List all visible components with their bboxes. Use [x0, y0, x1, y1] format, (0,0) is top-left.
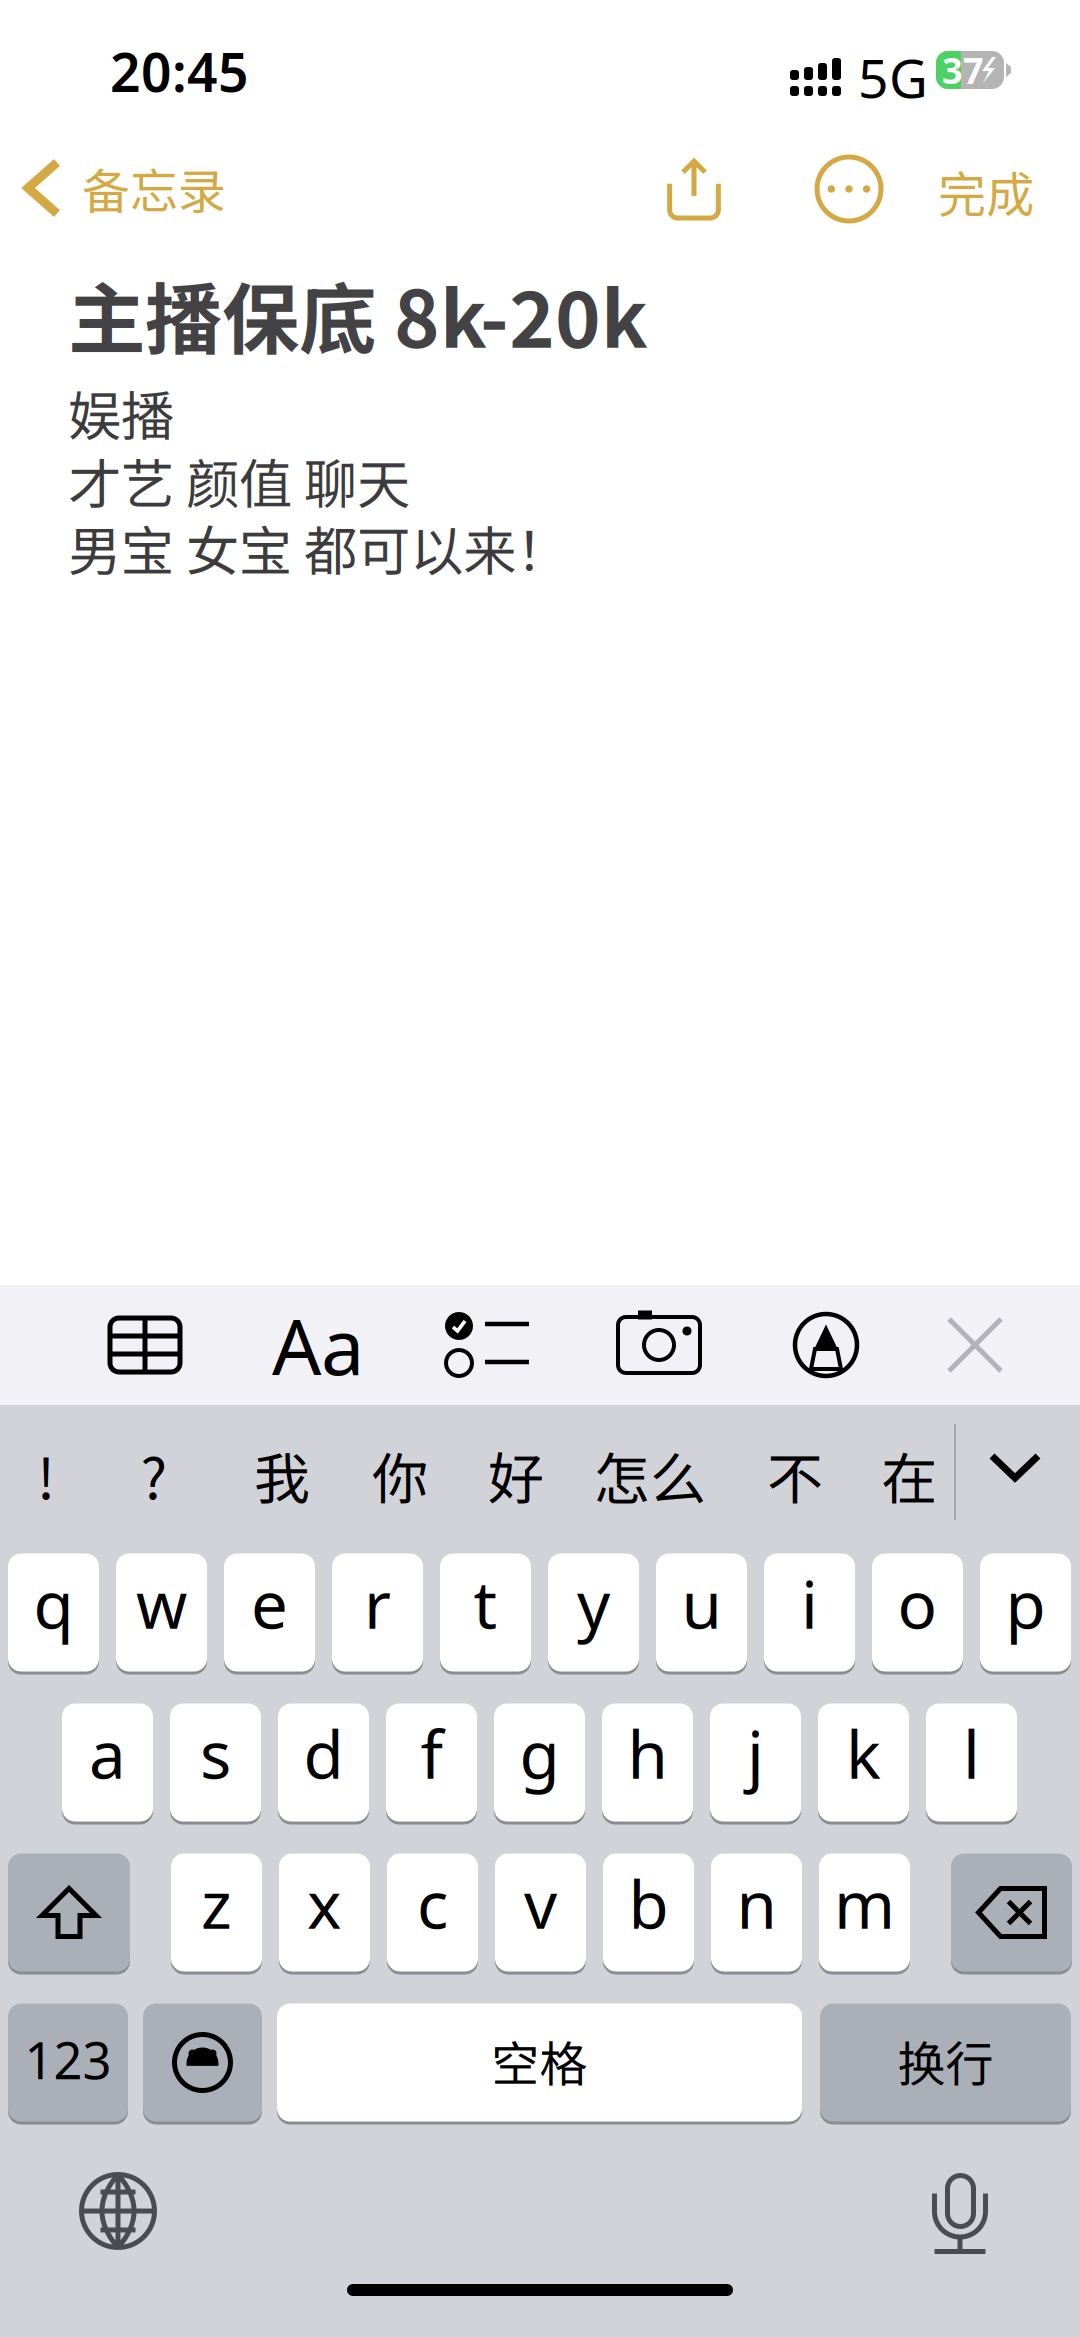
button[interactable]: Table: [80, 1285, 210, 1405]
staticText: 主播保底 8k-20k: [68, 258, 648, 370]
staticText: 不: [767, 1434, 823, 1516]
button[interactable]: 怎么: [570, 1405, 730, 1545]
button[interactable]: b: [603, 1852, 694, 1973]
button[interactable]: z: [171, 1852, 262, 1973]
staticText: 5G: [858, 42, 928, 113]
button[interactable]: 不: [736, 1405, 854, 1545]
button[interactable]: t: [440, 1552, 531, 1673]
button[interactable]: Dictate: [912, 2153, 1008, 2249]
staticText: x: [307, 1860, 342, 1947]
button[interactable]: Next keyboard: [70, 2163, 166, 2259]
staticText: !: [37, 1434, 55, 1516]
button[interactable]: d: [278, 1702, 369, 1823]
button[interactable]: i: [764, 1552, 855, 1673]
button[interactable]: Aa: [253, 1285, 383, 1405]
staticText: 备忘录: [82, 153, 226, 223]
staticText: Aa: [272, 1294, 364, 1396]
staticText: 20:45: [110, 36, 249, 107]
button[interactable]: 好: [456, 1405, 576, 1545]
button[interactable]: h: [602, 1702, 693, 1823]
staticText: a: [89, 1710, 126, 1797]
button[interactable]: Shift: [8, 1852, 130, 1973]
button[interactable]: u: [656, 1552, 747, 1673]
staticText: 123: [24, 2026, 111, 2093]
staticText: p: [1005, 1560, 1045, 1647]
staticText: u: [681, 1560, 721, 1647]
button[interactable]: g: [494, 1702, 585, 1823]
staticText: e: [251, 1560, 288, 1647]
staticText: s: [200, 1710, 231, 1797]
button[interactable]: s: [170, 1702, 261, 1823]
button[interactable]: j: [710, 1702, 801, 1823]
staticText: q: [33, 1560, 73, 1647]
staticText: w: [136, 1560, 187, 1647]
button[interactable]: More: [810, 146, 888, 232]
button[interactable]: k: [818, 1702, 909, 1823]
staticText: d: [303, 1710, 343, 1797]
staticText: b: [628, 1860, 668, 1947]
staticText: 才艺 颜值 聊天: [68, 442, 410, 519]
button[interactable]: Checklist: [422, 1285, 552, 1405]
button[interactable]: 我: [222, 1405, 342, 1545]
staticText: 怎么: [594, 1434, 706, 1516]
staticText: n: [736, 1860, 776, 1947]
staticText: y: [577, 1560, 610, 1647]
button[interactable]: Markup: [761, 1285, 891, 1405]
button[interactable]: 在: [850, 1405, 968, 1545]
button[interactable]: m: [819, 1852, 910, 1973]
staticText: c: [417, 1860, 448, 1947]
button[interactable]: 空格: [277, 2002, 802, 2123]
button[interactable]: !: [0, 1405, 92, 1545]
button[interactable]: n: [711, 1852, 802, 1973]
staticText: 37: [942, 46, 984, 94]
staticText: 我: [254, 1434, 310, 1516]
button[interactable]: Delete: [951, 1852, 1072, 1973]
button[interactable]: w: [116, 1552, 207, 1673]
button[interactable]: q: [8, 1552, 99, 1673]
staticText: 在: [881, 1434, 937, 1516]
button[interactable]: a: [62, 1702, 153, 1823]
button[interactable]: 你: [340, 1405, 460, 1545]
staticText: f: [420, 1710, 442, 1797]
staticText: z: [201, 1860, 232, 1947]
button[interactable]: o: [872, 1552, 963, 1673]
button[interactable]: Share: [655, 146, 733, 232]
staticText: 好: [488, 1434, 544, 1516]
staticText: r: [364, 1560, 391, 1647]
staticText: 你: [372, 1434, 428, 1516]
staticText: i: [801, 1560, 818, 1647]
button[interactable]: Close: [910, 1285, 1040, 1405]
button[interactable]: Hide candidates: [960, 1405, 1070, 1529]
button[interactable]: 123: [8, 2002, 128, 2123]
button[interactable]: Camera: [594, 1285, 724, 1405]
button[interactable]: c: [387, 1852, 478, 1973]
button[interactable]: e: [224, 1552, 315, 1673]
staticText: v: [524, 1860, 557, 1947]
button[interactable]: y: [548, 1552, 639, 1673]
button[interactable]: p: [980, 1552, 1071, 1673]
staticText: 换行: [897, 2026, 993, 2095]
staticText: 空格: [491, 2026, 587, 2095]
staticText: 完成: [938, 156, 1034, 226]
button[interactable]: f: [386, 1702, 477, 1823]
staticText: 娱播: [68, 374, 174, 451]
button[interactable]: 换行: [820, 2002, 1071, 2123]
button[interactable]: r: [332, 1552, 423, 1673]
button[interactable]: ?: [104, 1405, 204, 1545]
button[interactable]: x: [279, 1852, 370, 1973]
staticText: o: [897, 1560, 937, 1647]
staticText: t: [473, 1560, 497, 1647]
button[interactable]: 完成: [938, 148, 1034, 234]
staticText: k: [846, 1710, 881, 1797]
staticText: h: [627, 1710, 667, 1797]
staticText: j: [747, 1710, 764, 1797]
button[interactable]: v: [495, 1852, 586, 1973]
button[interactable]: l: [926, 1702, 1017, 1823]
staticText: 男宝 女宝 都可以来！: [68, 509, 569, 586]
button[interactable]: 备忘录: [28, 145, 226, 231]
staticText: m: [834, 1860, 895, 1947]
staticText: g: [519, 1710, 559, 1797]
button[interactable]: Emoji: [143, 2002, 262, 2123]
staticText: l: [963, 1710, 980, 1797]
staticText: ?: [140, 1434, 167, 1516]
